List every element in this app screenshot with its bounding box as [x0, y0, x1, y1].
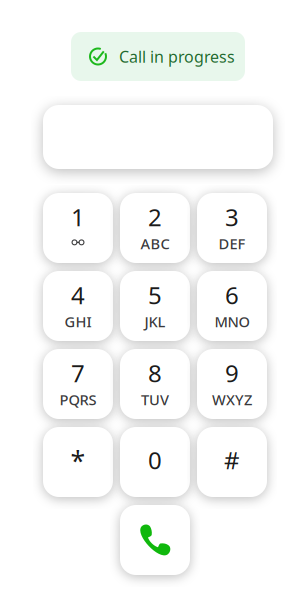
staticText: 2	[148, 201, 162, 233]
button[interactable]: 4	[43, 271, 113, 341]
button[interactable]: #	[197, 427, 267, 497]
button[interactable]: Call	[120, 505, 190, 575]
staticText: *	[70, 443, 85, 478]
staticText: Call in progress	[119, 46, 235, 67]
staticText: TUV	[141, 390, 169, 409]
button[interactable]: 2	[120, 193, 190, 263]
staticText: DEF	[218, 234, 245, 253]
button[interactable]: 5	[120, 271, 190, 341]
staticText: 1	[71, 201, 85, 233]
staticText: PQRS	[59, 390, 96, 409]
button[interactable]: 9	[197, 349, 267, 419]
staticText: WXYZ	[212, 390, 252, 409]
button[interactable]: 3	[197, 193, 267, 263]
staticText: MNO	[214, 312, 249, 331]
staticText: 8	[148, 357, 162, 389]
staticText: #	[224, 444, 240, 476]
button[interactable]: Call in progress	[71, 32, 245, 81]
button[interactable]: 1	[43, 193, 113, 263]
staticText: GHI	[64, 312, 91, 331]
staticText: 4	[71, 279, 85, 311]
staticText: 6	[225, 279, 239, 311]
button[interactable]: 7	[43, 349, 113, 419]
button[interactable]: 8	[120, 349, 190, 419]
staticText: 9	[225, 357, 239, 389]
button[interactable]: *	[43, 427, 113, 497]
staticText: JKL	[144, 312, 165, 331]
staticText: 5	[148, 279, 162, 311]
button[interactable]: 0	[120, 427, 190, 497]
staticText: 3	[225, 201, 239, 233]
staticText: 7	[71, 357, 85, 389]
button[interactable]: 6	[197, 271, 267, 341]
staticText: 0	[148, 444, 162, 476]
staticText: ABC	[140, 234, 169, 253]
